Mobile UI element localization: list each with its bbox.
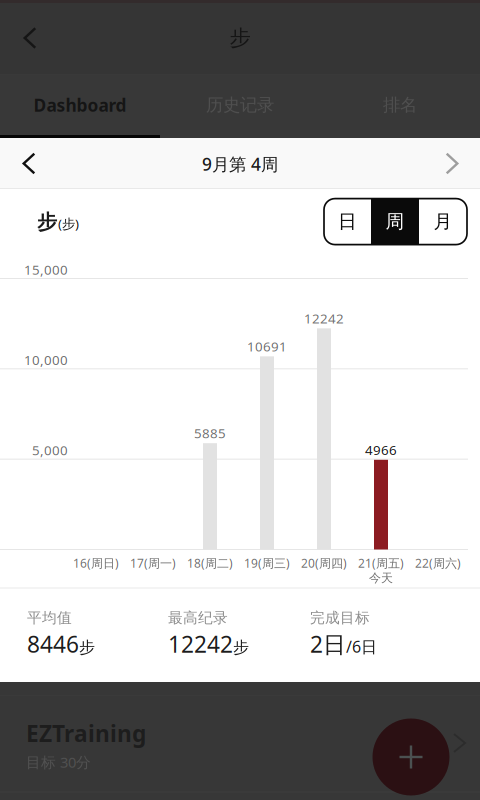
staticText: 日 [338, 210, 357, 233]
button[interactable]: Previous week [2, 138, 56, 189]
staticText: 目标 30分 [26, 752, 91, 772]
staticText: 平均值 [27, 609, 72, 627]
staticText: 2日 [310, 629, 346, 659]
staticText: 19(周三) [244, 555, 290, 571]
button[interactable]: 周 [371, 199, 419, 245]
staticText: 历史记录 [206, 94, 274, 116]
staticText: 步 [79, 638, 95, 657]
staticText: 12242 [304, 309, 344, 327]
staticText: 22(周六) [415, 555, 461, 571]
staticText: 20(周四) [301, 555, 347, 571]
staticText: 最高纪录 [168, 609, 228, 627]
button[interactable]: 月 [419, 199, 467, 245]
button[interactable]: Next week [425, 138, 479, 189]
staticText: 步 [37, 210, 57, 234]
staticText: 步 [233, 638, 249, 657]
button[interactable]: Back [1, 9, 59, 67]
staticText: 15,000 [24, 261, 68, 278]
button[interactable]: Add [372, 718, 449, 795]
staticText: 12242 [168, 629, 233, 659]
staticText: 18(周二) [187, 555, 233, 571]
staticText: 5,000 [32, 441, 68, 459]
staticText: 步 [229, 25, 250, 51]
staticText: 8446 [27, 629, 79, 659]
button[interactable]: 历史记录 [160, 75, 320, 135]
button[interactable]: EZTraining [0, 696, 480, 792]
staticText: 4966 [365, 441, 397, 459]
staticText: (步) [58, 215, 79, 232]
staticText: 完成目标 [310, 609, 370, 627]
staticText: 月 [433, 210, 452, 233]
staticText: 17(周一) [130, 555, 176, 571]
staticText: 10,000 [24, 351, 68, 369]
staticText: 10691 [247, 337, 287, 355]
staticText: 周 [385, 210, 404, 233]
button[interactable]: Dashboard [0, 75, 160, 135]
staticText: 5885 [194, 424, 226, 442]
staticText: 今天 [369, 571, 393, 585]
button[interactable]: 日 [324, 199, 371, 245]
staticText: 16(周日) [73, 555, 119, 571]
staticText: 9月第 4周 [202, 152, 278, 175]
staticText: 排名 [383, 94, 417, 116]
staticText: Dashboard [33, 93, 126, 116]
staticText: EZTraining [26, 718, 146, 748]
staticText: /6日 [346, 636, 377, 657]
staticText: 21(周五) [358, 555, 404, 571]
